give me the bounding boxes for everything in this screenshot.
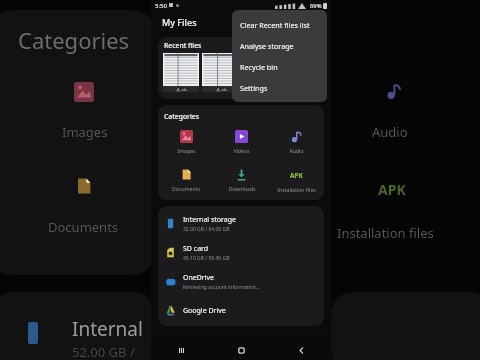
button[interactable]: Documents xyxy=(158,161,214,199)
staticText: 32.00 GB / 64.00 GB xyxy=(183,226,230,233)
button[interactable]: APK xyxy=(269,161,324,199)
staticText: APK xyxy=(290,171,303,180)
staticText: Installation files xyxy=(277,186,316,193)
staticText: 69% xyxy=(310,2,322,10)
staticText: Audio xyxy=(372,123,408,141)
button[interactable]: Back xyxy=(271,340,331,360)
staticText: Settings xyxy=(240,83,268,93)
staticText: Installation files xyxy=(337,224,434,242)
staticText: My Files xyxy=(162,16,197,28)
button[interactable]: SD card xyxy=(158,238,324,267)
staticText: Internal xyxy=(72,316,143,342)
button[interactable]: Internal storage xyxy=(158,209,324,238)
staticText: Google Drive xyxy=(183,306,226,316)
staticText: Downloads xyxy=(228,185,256,192)
staticText: Documents xyxy=(172,185,200,192)
button[interactable]: Videos xyxy=(214,123,269,161)
staticText: Categories xyxy=(18,25,130,55)
staticText: SD card xyxy=(183,244,209,254)
button[interactable]: Recents xyxy=(151,340,211,360)
staticText: 5:50 xyxy=(155,2,167,10)
staticText: Retrieving account information... xyxy=(183,284,260,291)
staticText: _A_.xls xyxy=(175,87,187,92)
button[interactable]: Images xyxy=(158,123,214,161)
staticText: Videos xyxy=(233,147,250,154)
staticText: Clear Recent files list xyxy=(240,20,310,30)
button[interactable]: Recent files xyxy=(158,37,324,99)
button[interactable]: Analyse storage xyxy=(232,35,327,56)
staticText: 52.00 GB / xyxy=(72,343,135,360)
button[interactable]: OneDrive xyxy=(158,267,324,296)
staticText: _A_.xls xyxy=(255,87,267,92)
button[interactable]: Google Drive xyxy=(158,296,324,325)
button[interactable]: Clear Recent files list xyxy=(232,14,327,35)
staticText: 45.10 GB / 59.45 GB xyxy=(183,255,230,262)
button[interactable]: Audio xyxy=(269,123,324,161)
staticText: Categories xyxy=(164,112,199,121)
staticText: Images xyxy=(177,147,196,154)
staticText: _A_.xls xyxy=(215,87,227,92)
staticText: OneDrive xyxy=(183,273,215,283)
staticText: Recycle bin xyxy=(240,62,278,72)
staticText: Analyse storage xyxy=(240,41,294,51)
staticText: Internal storage xyxy=(183,215,236,225)
button[interactable]: Downloads xyxy=(214,161,269,199)
button[interactable]: Settings xyxy=(232,77,327,98)
button[interactable]: Recycle bin xyxy=(232,56,327,77)
staticText: Documents xyxy=(48,218,119,236)
staticText: Audio xyxy=(289,147,304,154)
staticText: APK xyxy=(378,180,406,199)
staticText: Recent files xyxy=(164,41,202,50)
staticText: Images xyxy=(62,123,108,141)
button[interactable]: Home xyxy=(211,340,271,360)
